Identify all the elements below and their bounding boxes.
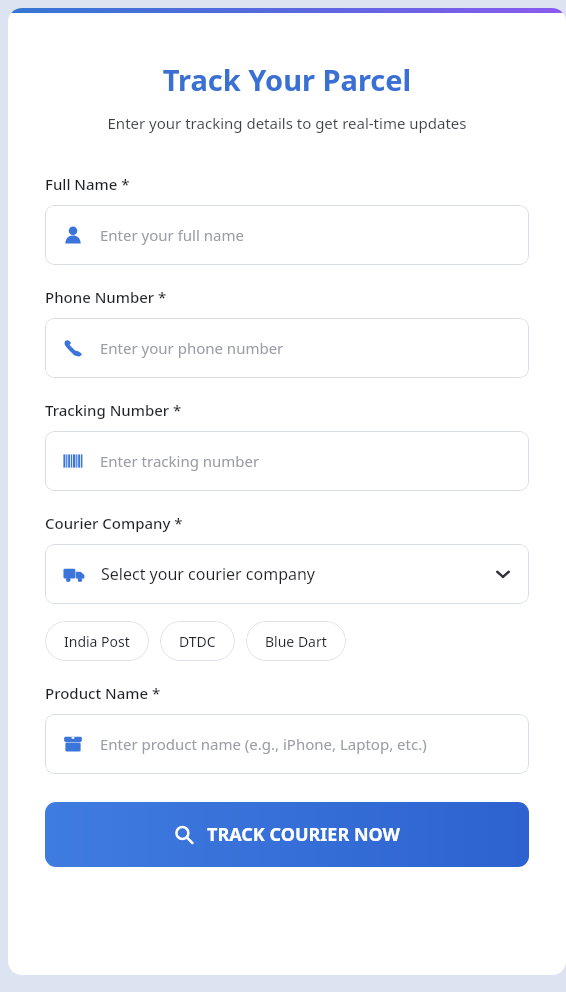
other: Barcode bbox=[63, 451, 83, 471]
button[interactable]: Phone bbox=[45, 318, 529, 378]
staticText: Enter your phone number bbox=[100, 338, 284, 358]
other: Person bbox=[63, 225, 83, 245]
button[interactable]: Blue Dart bbox=[246, 621, 346, 661]
other: Courier bbox=[63, 563, 85, 585]
staticText: TRACK COURIER NOW bbox=[207, 822, 400, 847]
staticText: Enter your tracking details to get real-… bbox=[45, 113, 529, 133]
staticText: India Post bbox=[64, 632, 130, 651]
staticText: Blue Dart bbox=[265, 632, 327, 651]
staticText: Product Name * bbox=[45, 683, 161, 703]
other: Product bbox=[63, 734, 83, 754]
button[interactable]: Barcode bbox=[45, 431, 529, 491]
other: Phone bbox=[63, 338, 83, 358]
button[interactable]: India Post bbox=[45, 621, 149, 661]
staticText: Courier Company * bbox=[45, 513, 183, 533]
staticText: Full Name * bbox=[45, 174, 130, 194]
button[interactable]: Courier bbox=[45, 544, 529, 604]
staticText: Select your courier company bbox=[101, 563, 495, 585]
staticText: Phone Number * bbox=[45, 287, 167, 307]
other: Expand bbox=[495, 566, 511, 582]
button[interactable]: DTDC bbox=[160, 621, 235, 661]
staticText: Enter tracking number bbox=[100, 451, 260, 471]
staticText: Enter product name (e.g., iPhone, Laptop… bbox=[100, 734, 427, 754]
staticText: Enter your full name bbox=[100, 225, 244, 245]
staticText: Track Your Parcel bbox=[45, 60, 529, 99]
button[interactable]: Person bbox=[45, 205, 529, 265]
button[interactable]: Search bbox=[45, 802, 529, 867]
staticText: DTDC bbox=[179, 632, 216, 651]
other: Search bbox=[174, 825, 194, 845]
button[interactable]: Product bbox=[45, 714, 529, 774]
staticText: Tracking Number * bbox=[45, 400, 182, 420]
